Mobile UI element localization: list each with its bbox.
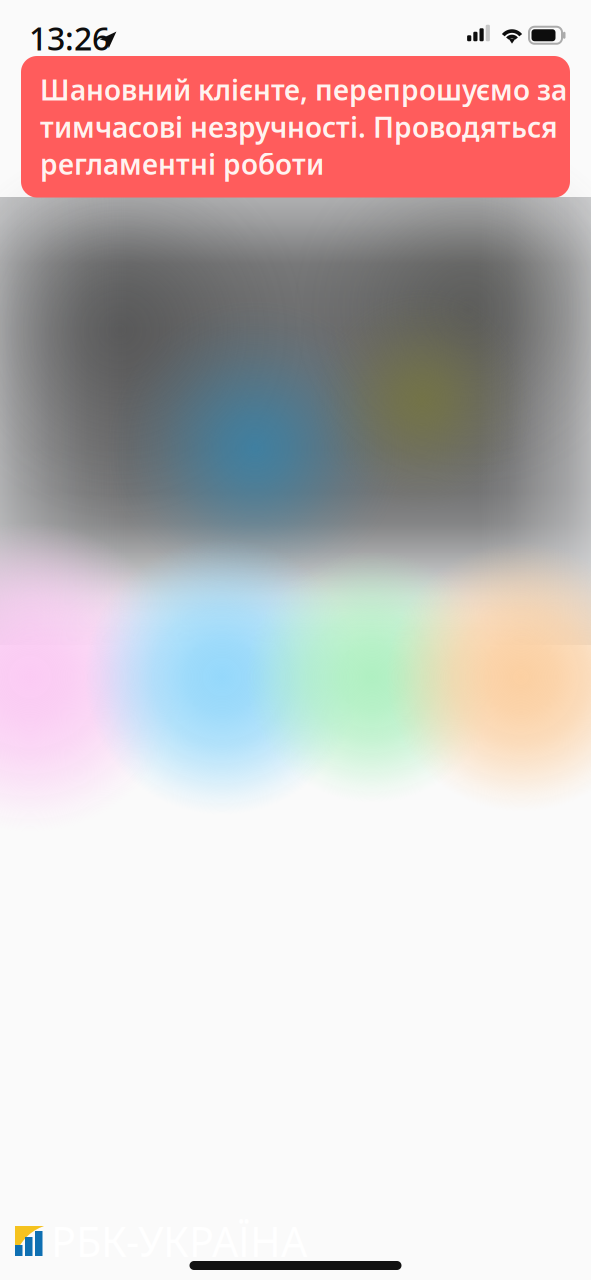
- staticText: тимчасові незручності. Проводяться: [40, 108, 558, 145]
- staticText: РБК-УКРАЇНА: [51, 1214, 307, 1268]
- staticText: регламентні роботи: [40, 145, 324, 183]
- staticText: Шановний клієнте, перепрошуємо за: [40, 71, 567, 108]
- staticText: 13:26: [29, 17, 110, 59]
- button[interactable]: Шановний клієнте, перепрошуємо за: [21, 56, 570, 197]
